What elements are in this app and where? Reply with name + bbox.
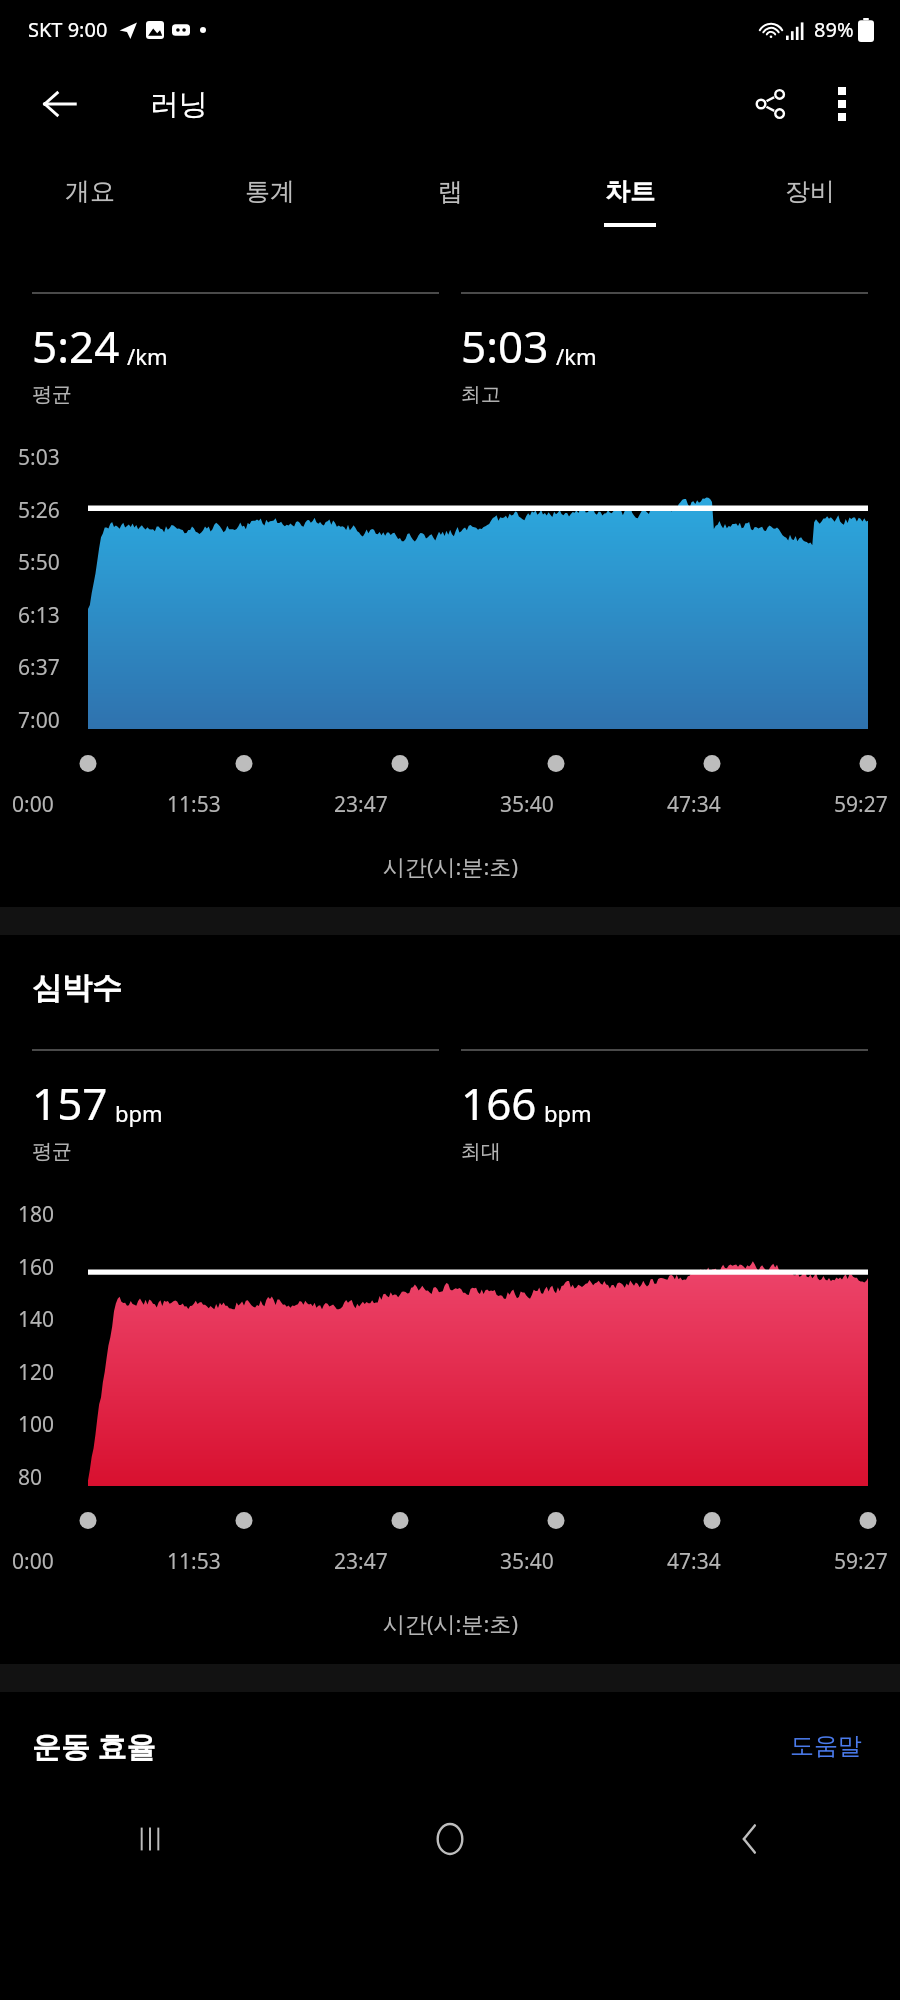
- staticText: 장비: [785, 176, 835, 207]
- button[interactable]: 도움말: [784, 1723, 868, 1769]
- staticText: /km: [556, 341, 597, 371]
- staticText: 평균: [32, 382, 72, 407]
- staticText: 100: [18, 1410, 55, 1439]
- staticText: 160: [18, 1253, 55, 1282]
- staticText: 140: [18, 1305, 55, 1334]
- staticText: 0:00: [12, 790, 54, 819]
- button[interactable]: Back: [600, 1800, 900, 1878]
- staticText: 심박수: [32, 969, 122, 1007]
- staticText: /km: [127, 341, 168, 371]
- staticText: 평균: [32, 1139, 72, 1164]
- staticText: 11:53: [167, 1547, 221, 1576]
- staticText: 최대: [461, 1139, 501, 1164]
- staticText: 35:40: [500, 1547, 554, 1576]
- staticText: 11:53: [167, 790, 221, 819]
- staticText: 최고: [461, 382, 501, 407]
- staticText: 5:03: [461, 316, 549, 376]
- staticText: 시간(시:분:초): [383, 1608, 518, 1638]
- staticText: 166: [461, 1073, 537, 1133]
- staticText: 5:50: [18, 548, 60, 577]
- staticText: 157: [32, 1073, 108, 1133]
- button[interactable]: Home: [300, 1800, 600, 1878]
- button[interactable]: Back: [24, 68, 96, 140]
- staticText: 47:34: [667, 1547, 721, 1576]
- staticText: 35:40: [500, 790, 554, 819]
- staticText: 러닝: [150, 86, 208, 123]
- staticText: 통계: [245, 176, 295, 207]
- staticText: 5:24: [32, 316, 120, 376]
- button[interactable]: Recent apps: [0, 1800, 300, 1878]
- staticText: 120: [18, 1358, 55, 1387]
- staticText: 시간(시:분:초): [383, 851, 518, 881]
- staticText: 개요: [65, 176, 115, 207]
- staticText: 5:03: [18, 443, 60, 472]
- staticText: 23:47: [334, 1547, 388, 1576]
- staticText: SKT 9:00: [28, 16, 108, 43]
- button[interactable]: 장비: [720, 150, 900, 248]
- staticText: 운동 효율: [32, 1726, 156, 1766]
- button[interactable]: 개요: [0, 150, 180, 248]
- staticText: 6:37: [18, 653, 60, 682]
- staticText: 차트: [605, 176, 655, 207]
- staticText: 80: [18, 1463, 43, 1492]
- button[interactable]: 랩: [360, 150, 540, 248]
- staticText: 6:13: [18, 601, 60, 630]
- staticText: 59:27: [834, 790, 888, 819]
- staticText: 180: [18, 1200, 55, 1229]
- staticText: 5:26: [18, 496, 60, 525]
- button[interactable]: 통계: [180, 150, 360, 248]
- staticText: 도움말: [790, 1731, 862, 1761]
- staticText: 23:47: [334, 790, 388, 819]
- staticText: 0:00: [12, 1547, 54, 1576]
- staticText: bpm: [544, 1098, 592, 1128]
- staticText: bpm: [115, 1098, 163, 1128]
- button[interactable]: Share: [734, 68, 806, 140]
- staticText: 59:27: [834, 1547, 888, 1576]
- staticText: 47:34: [667, 790, 721, 819]
- staticText: 랩: [438, 176, 463, 207]
- button[interactable]: More options: [806, 68, 878, 140]
- staticText: 89%: [814, 16, 854, 43]
- staticText: 7:00: [18, 706, 60, 735]
- button[interactable]: 차트: [540, 150, 720, 248]
